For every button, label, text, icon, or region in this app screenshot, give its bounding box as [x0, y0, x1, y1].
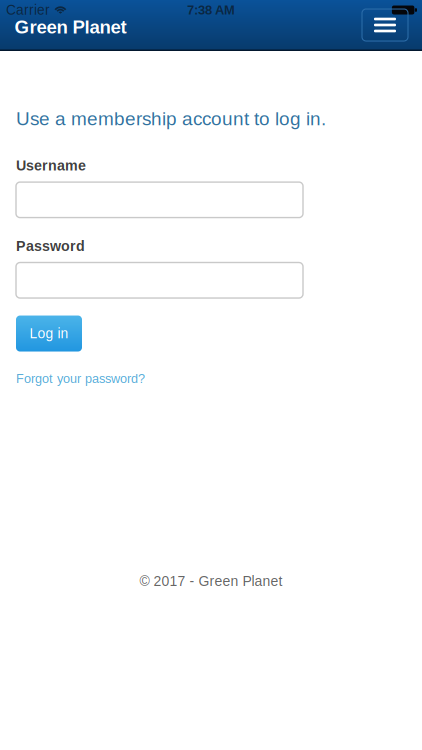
staticText: Green Planet: [14, 17, 126, 37]
staticText: Carrier: [6, 2, 50, 18]
staticText: Use a membership account to log in.: [16, 108, 326, 129]
staticText: Forgot your password?: [16, 371, 145, 386]
button[interactable]: Forgot your password?: [16, 368, 145, 389]
staticText: Username: [16, 158, 86, 174]
button[interactable]: Green Planet: [0, 13, 136, 41]
button[interactable]: Log in: [16, 315, 82, 351]
button[interactable]: Menu: [362, 9, 408, 41]
staticText: 7:38 AM: [187, 3, 235, 17]
staticText: Password: [16, 238, 85, 254]
staticText: Log in: [29, 326, 68, 341]
staticText: © 2017 - Green Planet: [139, 573, 282, 589]
